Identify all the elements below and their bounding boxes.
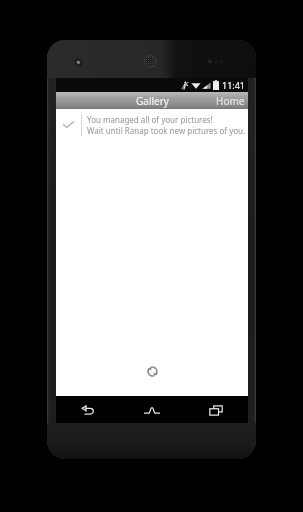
staticText: Gallery: [136, 94, 169, 108]
other: Done: [63, 121, 74, 129]
staticText: You managed all of your pictures!: [87, 114, 213, 125]
button[interactable]: Recent apps: [184, 396, 248, 424]
button[interactable]: Back: [56, 396, 120, 424]
button[interactable]: Home: [120, 396, 184, 424]
button[interactable]: Done: [56, 114, 248, 136]
staticText: Home: [216, 94, 245, 108]
button[interactable]: Home: [213, 92, 248, 109]
button[interactable]: Refresh: [141, 360, 163, 382]
staticText: 11:41: [222, 79, 246, 91]
staticText: Wait until Ranap took new pictures of yo…: [87, 125, 246, 136]
